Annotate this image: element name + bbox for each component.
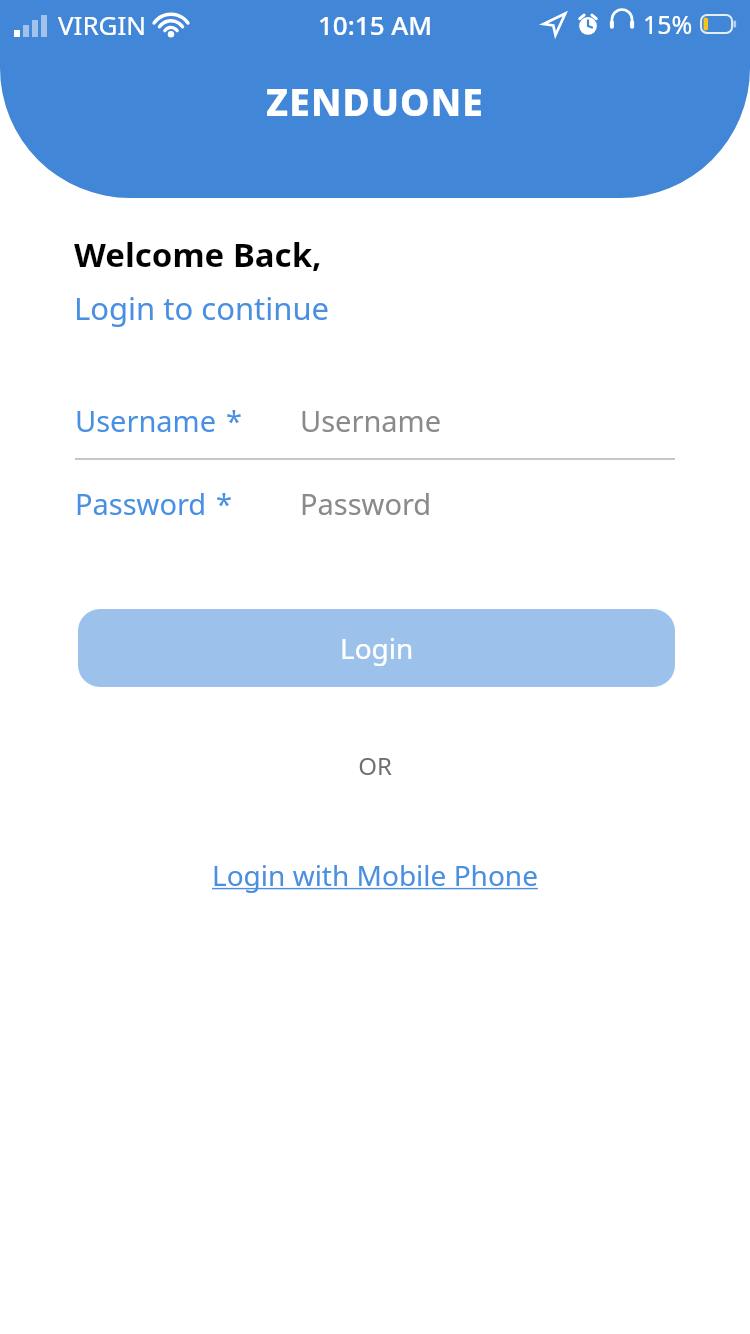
button[interactable]: Login: [78, 609, 675, 687]
staticText: Login to continue: [74, 287, 330, 329]
staticText: Username: [75, 401, 217, 440]
staticText: Login with Mobile Phone: [212, 856, 538, 894]
staticText: Password: [75, 484, 207, 523]
staticText: Welcome Back,: [74, 232, 322, 277]
button[interactable]: Password: [0, 484, 750, 523]
staticText: OR: [0, 749, 750, 782]
staticText: VIRGIN: [58, 7, 147, 42]
button[interactable]: Login with Mobile Phone: [204, 852, 546, 898]
staticText: 10:15 AM: [318, 7, 433, 42]
button[interactable]: Username: [0, 401, 750, 440]
staticText: 15%: [643, 7, 693, 41]
staticText: *: [216, 484, 232, 523]
staticText: ZENDUONE: [266, 76, 485, 126]
staticText: Username: [300, 401, 442, 440]
staticText: Password: [300, 484, 432, 523]
staticText: Login: [340, 629, 414, 667]
staticText: *: [226, 401, 242, 440]
